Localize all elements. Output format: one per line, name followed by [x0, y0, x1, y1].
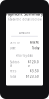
staticText: Subtotal	[10, 60, 20, 67]
staticText: Payment Summary	[6, 11, 43, 17]
staticText: Filter by date	[15, 54, 33, 57]
staticText: Date	[10, 46, 16, 50]
staticText: ●●●○○	[8, 0, 11, 18]
staticText: $120.00	[28, 60, 39, 67]
staticText: Total	[10, 75, 16, 79]
staticText: $3.50	[30, 69, 39, 73]
staticText: Today	[32, 46, 39, 50]
staticText: Sent to	[10, 41, 20, 44]
staticText: Review the details below	[7, 18, 41, 21]
staticText: Amount	[19, 31, 30, 35]
staticText: Fees	[10, 69, 16, 73]
staticText: Alex M.	[30, 41, 39, 44]
staticText: $123.50	[26, 75, 39, 79]
